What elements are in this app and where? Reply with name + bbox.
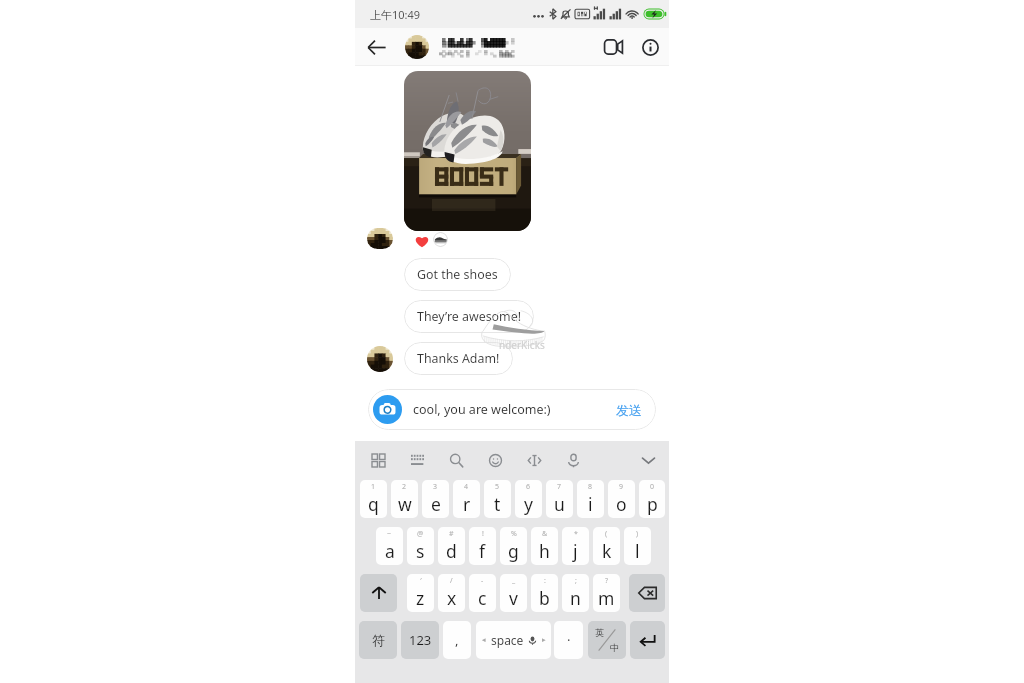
button[interactable]: Photo of sneakers (404, 71, 531, 231)
button[interactable]: 9 (608, 480, 635, 518)
staticText: nderKicks (499, 338, 545, 352)
staticText: o (616, 492, 627, 516)
staticText: x (447, 586, 457, 610)
staticText: ◂ (482, 636, 486, 644)
button[interactable]: Keyboard (405, 448, 429, 472)
staticText: a (385, 539, 395, 563)
staticText: b (539, 586, 550, 610)
button[interactable]: 6 (515, 480, 542, 518)
staticText: f (479, 539, 486, 563)
button[interactable]: Translate (522, 448, 546, 472)
button[interactable]: · (554, 621, 583, 659)
button[interactable]: ) (624, 527, 651, 565)
staticText: / (450, 576, 453, 586)
button[interactable]: Enter (630, 621, 665, 659)
button[interactable]: 5 (484, 480, 511, 518)
staticText: d (446, 539, 457, 563)
button[interactable]: 3 (422, 480, 449, 518)
button[interactable]: Voice (561, 448, 585, 472)
staticText: 9 (619, 482, 624, 492)
button[interactable]: * (562, 527, 589, 565)
button[interactable]: 0 (639, 480, 665, 518)
button[interactable]: Emoji (483, 448, 507, 472)
staticText: , (455, 631, 459, 649)
button[interactable]: # (438, 527, 465, 565)
staticText: 3 (433, 482, 438, 492)
button[interactable]: 8 (577, 480, 604, 518)
button[interactable]: Got the shoes (404, 258, 511, 291)
staticText: e (431, 492, 441, 516)
staticText: - (481, 576, 484, 586)
staticText: s (416, 539, 425, 563)
staticText: space (491, 632, 524, 648)
button[interactable]: _ (500, 574, 527, 612)
button[interactable]: 1 (360, 480, 387, 518)
button[interactable]: Apps (366, 448, 390, 472)
staticText: ) (636, 529, 639, 539)
button[interactable]: Video call (598, 32, 628, 62)
staticText: : (544, 576, 546, 586)
button[interactable]: Info (635, 32, 665, 62)
button[interactable]: Thanks Adam! (404, 342, 513, 375)
button[interactable]: Hide keyboard (636, 448, 660, 472)
staticText: y (524, 492, 533, 516)
staticText: 6 (526, 482, 531, 492)
button[interactable]: 2 (391, 480, 418, 518)
staticText: t (494, 492, 501, 516)
button[interactable]: 发送 (616, 402, 656, 418)
staticText: 8 (588, 482, 593, 492)
staticText: # (449, 529, 454, 539)
staticText: cool, you are welcome:) (413, 401, 616, 418)
staticText: % (511, 529, 517, 539)
staticText: p (647, 492, 658, 516)
staticText: n (570, 586, 581, 610)
staticText: ! (482, 529, 484, 539)
button[interactable]: 4 (453, 480, 480, 518)
staticText: h (539, 539, 550, 563)
staticText: 中 (610, 642, 619, 653)
staticText: q (368, 492, 379, 516)
staticText: 5 (495, 482, 500, 492)
button[interactable]: Search (444, 448, 468, 472)
staticText: They’re awesome! (417, 308, 521, 325)
button[interactable]: Back (361, 32, 391, 62)
button[interactable]: ~ (376, 527, 403, 565)
staticText: ′ (420, 576, 422, 586)
button[interactable]: They’re awesome! (404, 300, 534, 333)
button[interactable]: 7 (546, 480, 573, 518)
button[interactable]: % (500, 527, 527, 565)
button[interactable]: ′ (407, 574, 434, 612)
button[interactable]: ! (469, 527, 496, 565)
staticText: r (463, 492, 471, 516)
button[interactable]: - (469, 574, 496, 612)
staticText: 123 (409, 631, 432, 649)
button[interactable]: ( (593, 527, 620, 565)
button[interactable]: @ (407, 527, 434, 565)
staticText: Thanks Adam! (417, 350, 500, 367)
button[interactable]: 符 (359, 621, 397, 659)
staticText: c (478, 586, 487, 610)
staticText: 1 (371, 482, 376, 492)
button[interactable]: ? (593, 574, 620, 612)
button[interactable]: & (531, 527, 558, 565)
staticText: 2 (402, 482, 407, 492)
staticText: 4 (464, 482, 469, 492)
button[interactable]: 123 (401, 621, 439, 659)
staticText: i (588, 492, 593, 516)
staticText: & (542, 529, 548, 539)
button[interactable]: ; (562, 574, 589, 612)
button[interactable]: / (438, 574, 465, 612)
button[interactable]: ◂ (476, 621, 551, 659)
staticText: * (574, 529, 578, 539)
button[interactable]: cool, you are welcome:) (368, 389, 656, 430)
button[interactable]: , (443, 621, 471, 659)
button[interactable]: Language (588, 621, 626, 659)
staticText: 上午10:49 (370, 7, 421, 22)
staticText: @ (417, 529, 424, 539)
button[interactable]: Shift (360, 574, 397, 612)
button[interactable]: : (531, 574, 558, 612)
staticText: 发送 (616, 402, 642, 418)
button[interactable]: Backspace (629, 574, 665, 612)
staticText: l (635, 539, 640, 563)
staticText: ( (605, 529, 608, 539)
